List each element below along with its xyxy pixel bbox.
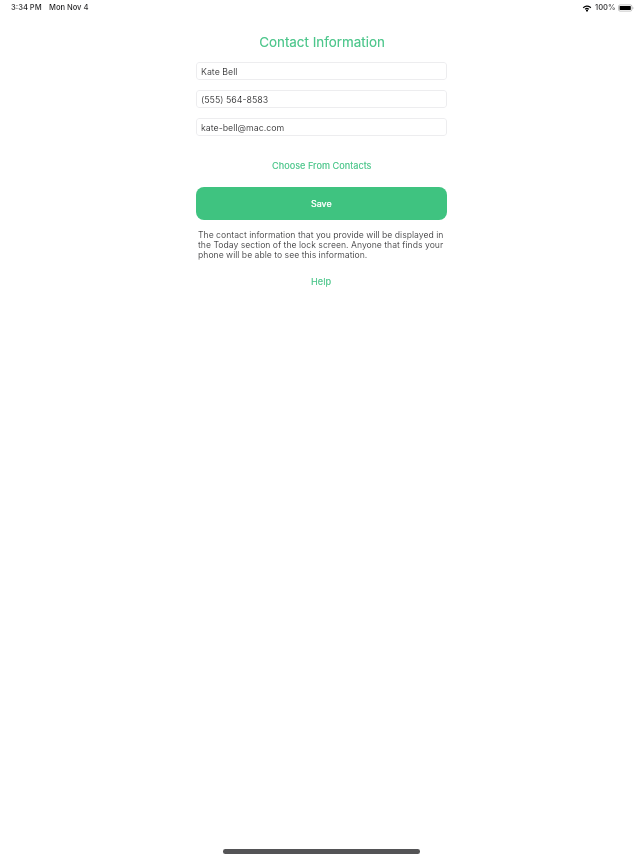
other: Wi-Fi <box>582 4 592 11</box>
staticText: Kate Bell <box>201 66 238 77</box>
staticText: 100% <box>595 3 616 12</box>
staticText: Mon Nov 4 <box>49 3 89 12</box>
staticText: Contact Information <box>259 34 385 50</box>
staticText: (555) 564-8583 <box>201 94 269 105</box>
staticText: kate-bell@mac.com <box>201 122 285 133</box>
button[interactable]: Help <box>297 272 346 291</box>
staticText: The contact information that you provide… <box>198 230 445 260</box>
button[interactable]: (555) 564-8583 <box>196 90 447 108</box>
staticText: Save <box>311 198 332 209</box>
button[interactable]: Kate Bell <box>196 62 447 80</box>
button[interactable]: Choose From Contacts <box>260 156 384 175</box>
staticText: Help <box>311 276 332 287</box>
other: Battery 100 percent <box>618 4 634 12</box>
button[interactable]: Save <box>196 187 447 220</box>
staticText: 3:34 PM <box>11 3 42 12</box>
button[interactable]: kate-bell@mac.com <box>196 118 447 136</box>
staticText: Choose From Contacts <box>272 160 372 171</box>
